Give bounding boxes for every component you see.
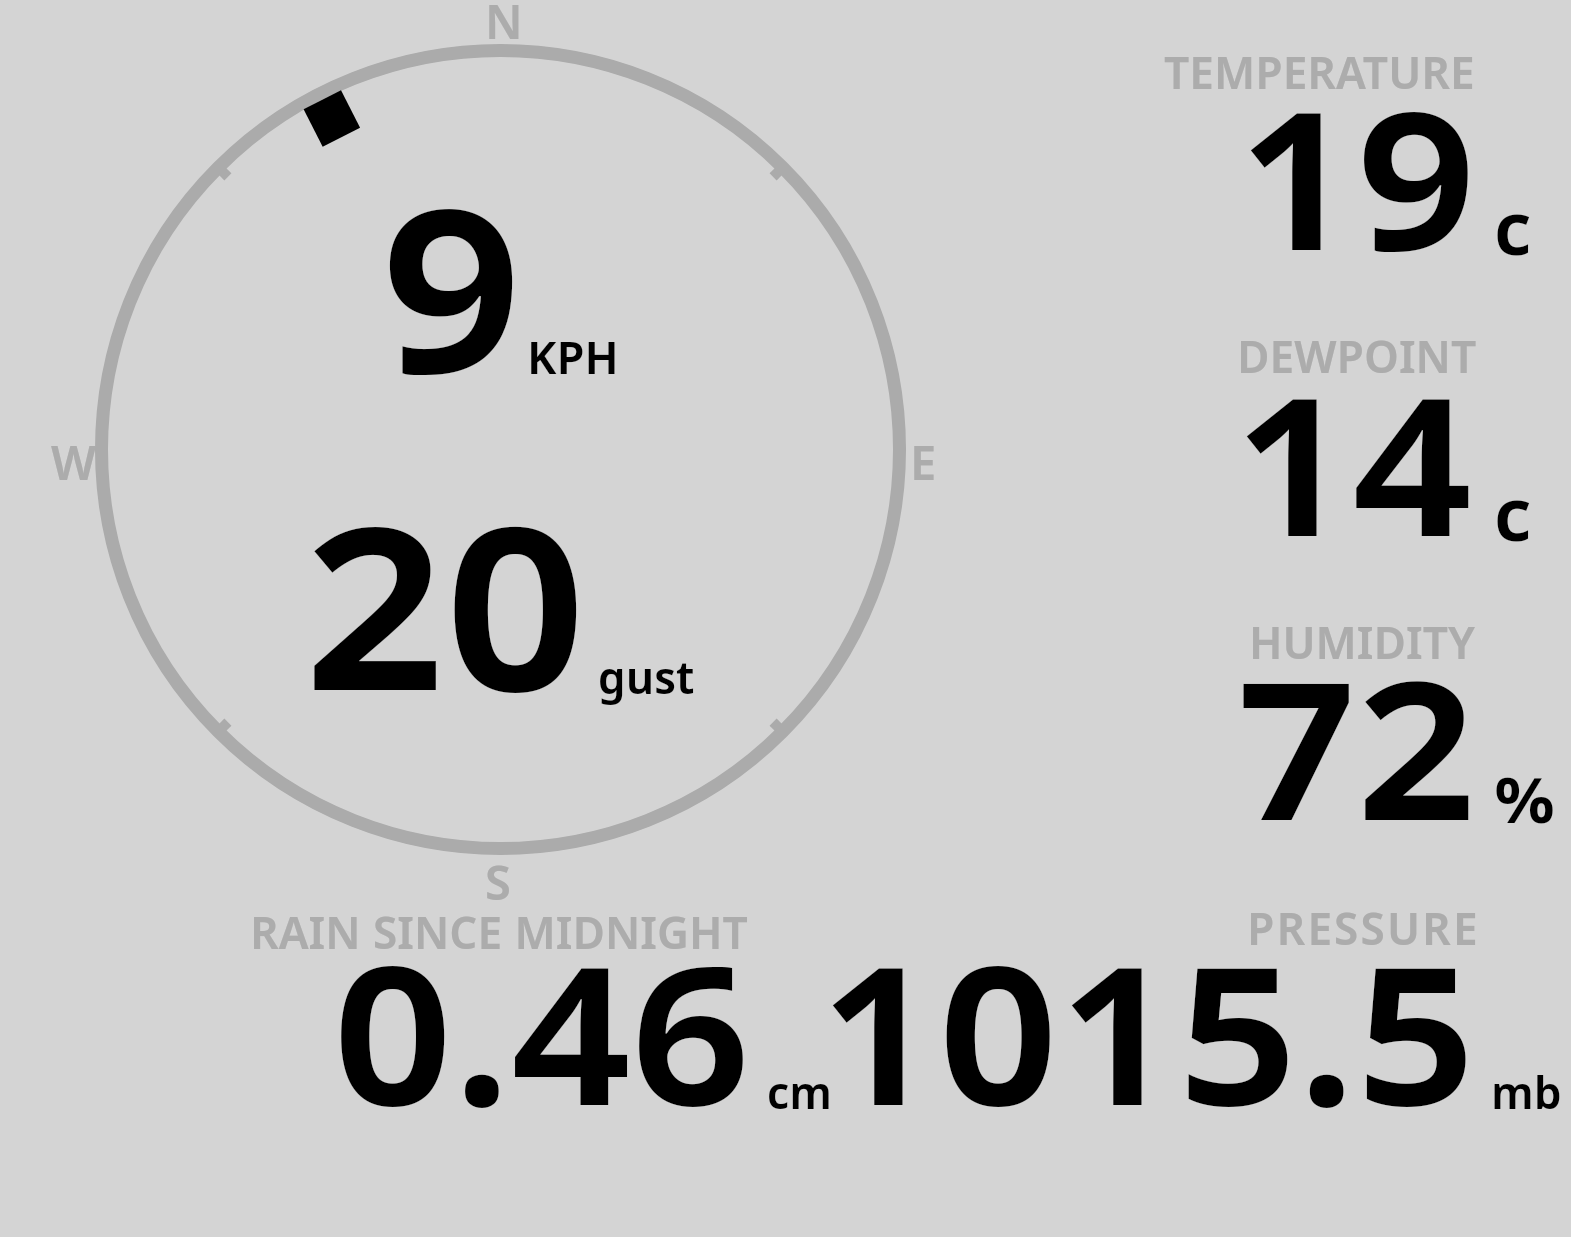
staticText: S — [485, 859, 511, 923]
staticText: 0.46 — [333, 923, 751, 1206]
staticText: gust — [598, 656, 695, 715]
staticText: PRESSURE — [1247, 907, 1480, 967]
staticText: W — [51, 439, 97, 503]
staticText: HUMIDITY — [1249, 621, 1475, 681]
staticText: KPH — [527, 335, 619, 396]
staticText: 9 — [381, 159, 522, 492]
staticText: 20 — [304, 476, 586, 809]
staticText: RAIN SINCE MIDNIGHT — [250, 911, 748, 971]
staticText: 72 — [1237, 638, 1477, 921]
button[interactable]: Humidity 72 percent — [950, 574, 1567, 859]
staticText: E — [910, 439, 937, 503]
button[interactable]: Rain since midnight 0.46 cm — [200, 860, 840, 1140]
staticText: TEMPERATURE — [1164, 51, 1475, 111]
staticText: % — [1494, 763, 1556, 856]
staticText: DEWPOINT — [1237, 335, 1477, 395]
button[interactable]: Pressure 1015.5 mb — [840, 860, 1567, 1140]
staticText: c — [1494, 191, 1532, 291]
staticText: 19 — [1237, 68, 1477, 351]
staticText: cm — [767, 1071, 832, 1130]
button[interactable]: Wind direction compass — [95, 44, 906, 855]
button[interactable]: Temperature 19 c — [950, 4, 1567, 289]
button[interactable]: Dewpoint 14 c — [950, 289, 1567, 574]
staticText: c — [1494, 477, 1532, 577]
staticText: 14 — [1233, 354, 1473, 637]
staticText: N — [485, 0, 523, 62]
staticText: 1015.5 — [819, 923, 1476, 1206]
staticText: mb — [1491, 1071, 1562, 1130]
